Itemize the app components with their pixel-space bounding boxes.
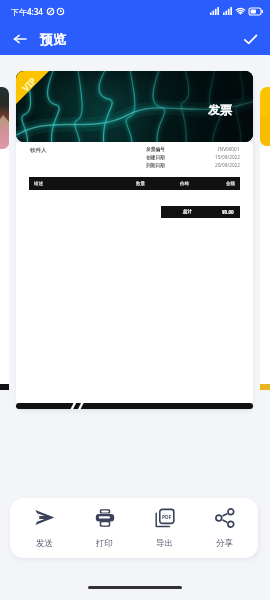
staticText: 20/09/2022 — [215, 162, 240, 168]
button[interactable]: PDF — [138, 501, 190, 555]
staticText: ¥0.00 — [222, 209, 234, 215]
button[interactable]: 分享 — [198, 501, 250, 555]
staticText: VIP — [19, 74, 38, 94]
button[interactable]: 打印 — [78, 501, 130, 555]
staticText: 分享 — [216, 538, 233, 549]
staticText: 预览 — [40, 31, 66, 47]
staticText: 导出 — [156, 538, 173, 549]
staticText: 金额 — [226, 181, 235, 187]
button[interactable]: Confirm — [239, 28, 261, 50]
staticText: 15/09/2022 — [215, 154, 240, 160]
staticText: 描述 — [34, 181, 43, 187]
staticText: 收件人 — [30, 147, 47, 154]
staticText: 价格 — [180, 181, 189, 187]
staticText: 总计 — [183, 209, 192, 215]
staticText: 发票编号 — [146, 146, 165, 152]
staticText: 打印 — [96, 538, 113, 549]
staticText: 数量 — [136, 181, 145, 187]
staticText: 下午4:34 — [11, 6, 43, 17]
staticText: 发票 — [208, 102, 232, 117]
button[interactable]: Back — [9, 28, 31, 50]
button[interactable]: 发送 — [18, 501, 70, 555]
staticText: 发送 — [36, 538, 53, 549]
staticText: 创建日期 — [146, 154, 165, 160]
staticText: INV00001 — [218, 146, 240, 152]
staticText: PDF — [162, 514, 172, 521]
staticText: 到期日期 — [146, 162, 165, 168]
